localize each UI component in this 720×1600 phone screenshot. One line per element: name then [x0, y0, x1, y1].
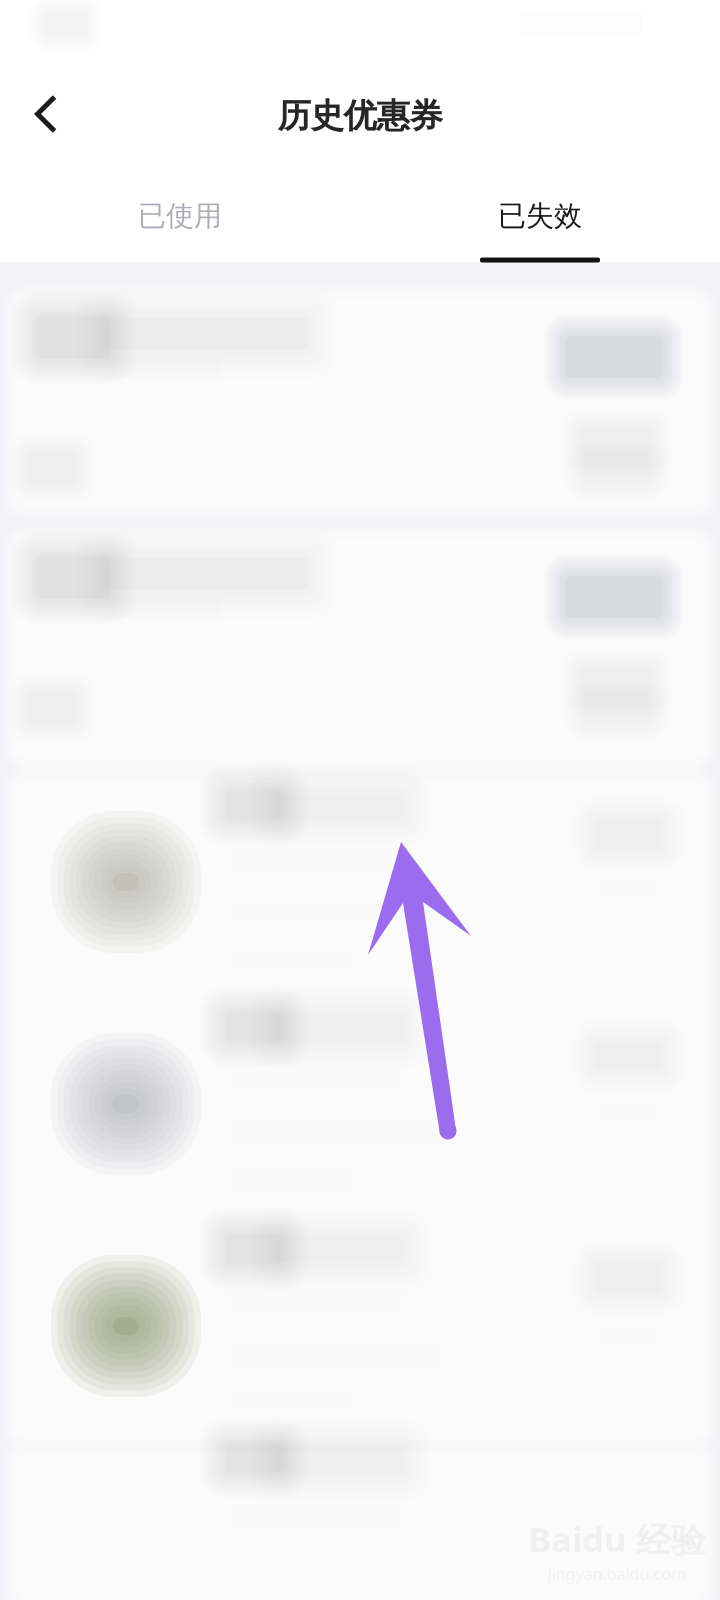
staticText: 已失效 [498, 199, 582, 233]
button[interactable]: 已失效 [390, 166, 690, 266]
staticText: jingyan.baidu.com [547, 1563, 686, 1584]
button[interactable]: Back [4, 72, 88, 156]
button[interactable]: 已使用 [30, 166, 330, 266]
staticText: Baidu 经验 [528, 1516, 706, 1562]
staticText: 已使用 [138, 199, 222, 233]
staticText: 历史优惠券 [277, 95, 442, 136]
